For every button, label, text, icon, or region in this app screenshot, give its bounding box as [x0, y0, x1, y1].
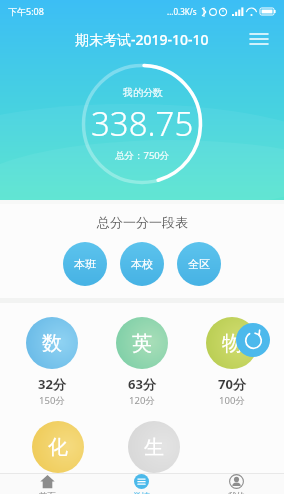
staticText: 全区 — [188, 257, 210, 271]
button[interactable]: 化 — [20, 421, 96, 473]
button[interactable]: 首页 — [0, 474, 94, 494]
staticText: 生 — [144, 435, 164, 460]
staticText: 32分 — [38, 375, 66, 393]
staticText: 63分 — [128, 375, 156, 393]
button[interactable]: 物 — [194, 317, 270, 407]
staticText: 120分 — [129, 394, 155, 407]
button[interactable]: 本校 — [120, 242, 164, 286]
button[interactable]: 我的 — [189, 474, 284, 494]
button[interactable]: 学情 — [94, 474, 189, 494]
staticText: 100分 — [219, 394, 245, 407]
button[interactable]: Refresh — [236, 323, 270, 357]
staticText: 本班 — [74, 257, 96, 271]
staticText: 期末考试-2019-10-10 — [75, 30, 209, 49]
staticText: 英 — [132, 331, 152, 356]
staticText: 首页 — [39, 491, 56, 494]
staticText: 我的分数 — [123, 86, 163, 99]
staticText: 总分：750分 — [115, 149, 170, 162]
staticText: 物 — [222, 331, 242, 356]
staticText: 学情 — [133, 491, 150, 494]
staticText: 我的 — [228, 491, 245, 494]
staticText: 70分 — [218, 375, 246, 393]
staticText: 数 — [42, 331, 62, 356]
button[interactable]: 生 — [116, 421, 192, 473]
staticText: 150分 — [39, 394, 65, 407]
staticText: 下午5:08 — [8, 5, 44, 17]
button[interactable]: 全区 — [177, 242, 221, 286]
staticText: 总分一分一段表 — [97, 214, 188, 230]
staticText: ...0.3K/s — [167, 6, 197, 17]
staticText: 本校 — [131, 257, 153, 271]
button[interactable]: Menu — [244, 24, 274, 54]
staticText: 化 — [48, 435, 68, 460]
staticText: 338.75 — [91, 101, 194, 146]
button[interactable]: 数 — [14, 317, 90, 407]
button[interactable]: 本班 — [63, 242, 107, 286]
button[interactable]: 英 — [104, 317, 180, 407]
